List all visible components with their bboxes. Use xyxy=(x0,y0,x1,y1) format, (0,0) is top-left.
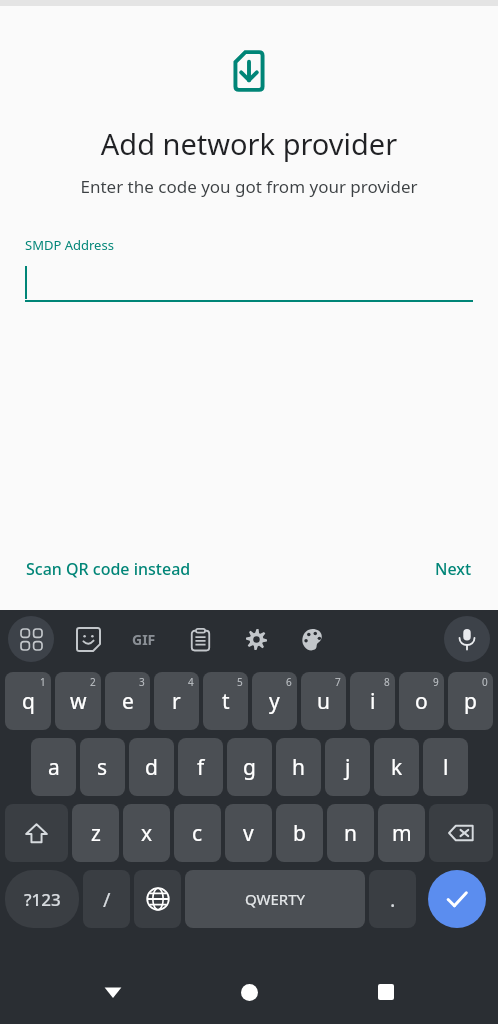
button[interactable]: g xyxy=(227,738,272,796)
button[interactable]: j xyxy=(325,738,370,796)
staticText: g xyxy=(243,753,256,782)
button[interactable]: k xyxy=(374,738,419,796)
button[interactable]: Voice input xyxy=(444,616,490,662)
staticText: t xyxy=(222,687,230,716)
staticText: q xyxy=(22,687,35,716)
staticText: / xyxy=(103,886,111,913)
button[interactable]: p xyxy=(448,672,493,730)
button[interactable]: Enter xyxy=(428,870,486,928)
button[interactable]: a xyxy=(31,738,76,796)
staticText: SMDP Address xyxy=(25,236,114,254)
staticText: o xyxy=(415,687,428,716)
staticText: j xyxy=(345,753,351,782)
button[interactable]: Recents xyxy=(362,968,410,1016)
button[interactable]: u xyxy=(301,672,346,730)
button[interactable]: QWERTY xyxy=(185,870,365,928)
button[interactable]: Back xyxy=(89,968,137,1016)
button[interactable]: h xyxy=(276,738,321,796)
button[interactable]: s xyxy=(80,738,125,796)
button[interactable]: ?123 xyxy=(5,870,79,928)
button[interactable]: f xyxy=(178,738,223,796)
button[interactable]: Backspace xyxy=(429,804,493,862)
button[interactable]: Next xyxy=(427,552,480,586)
staticText: b xyxy=(293,819,306,848)
button[interactable]: b xyxy=(276,804,323,862)
staticText: ?123 xyxy=(24,888,61,911)
button[interactable]: SMDP Address xyxy=(25,236,473,302)
button[interactable]: w xyxy=(55,672,101,730)
staticText: r xyxy=(172,687,181,716)
staticText: GIF xyxy=(132,630,156,649)
button[interactable]: l xyxy=(423,738,468,796)
staticText: QWERTY xyxy=(245,889,306,909)
button[interactable]: . xyxy=(369,870,416,928)
staticText: v xyxy=(243,819,254,848)
staticText: 9 xyxy=(433,675,439,689)
button[interactable]: More options xyxy=(8,616,54,662)
staticText: 7 xyxy=(335,675,341,689)
staticText: Scan QR code instead xyxy=(26,558,191,580)
button[interactable]: i xyxy=(350,672,395,730)
staticText: y xyxy=(269,687,280,716)
staticText: 6 xyxy=(286,675,292,689)
staticText: 8 xyxy=(384,675,390,689)
staticText: n xyxy=(344,819,357,848)
button[interactable]: Home xyxy=(225,968,273,1016)
staticText: s xyxy=(97,753,108,782)
staticText: 2 xyxy=(90,675,96,689)
button[interactable]: Change language xyxy=(134,870,181,928)
staticText: 3 xyxy=(139,675,145,689)
staticText: l xyxy=(443,753,449,782)
button[interactable]: o xyxy=(399,672,444,730)
button[interactable]: z xyxy=(72,804,119,862)
button[interactable]: e xyxy=(105,672,150,730)
button[interactable]: d xyxy=(129,738,174,796)
button[interactable]: Theme xyxy=(290,617,334,661)
button[interactable]: GIF xyxy=(122,617,166,661)
staticText: a xyxy=(48,753,60,782)
staticText: . xyxy=(390,886,396,913)
staticText: u xyxy=(317,687,330,716)
button[interactable]: r xyxy=(154,672,199,730)
button[interactable]: Clipboard xyxy=(178,617,222,661)
button[interactable]: c xyxy=(174,804,221,862)
button[interactable]: v xyxy=(225,804,272,862)
button[interactable]: Settings xyxy=(234,617,278,661)
staticText: k xyxy=(391,753,403,782)
staticText: f xyxy=(197,753,205,782)
button[interactable]: Shift xyxy=(5,804,68,862)
button[interactable]: m xyxy=(378,804,425,862)
button[interactable]: Stickers xyxy=(66,617,110,661)
staticText: Next xyxy=(435,558,472,580)
staticText: 1 xyxy=(40,675,46,689)
staticText: z xyxy=(91,819,101,848)
button[interactable]: x xyxy=(123,804,170,862)
button[interactable]: / xyxy=(83,870,130,928)
staticText: Add network provider xyxy=(0,124,498,163)
staticText: Enter the code you got from your provide… xyxy=(0,175,498,198)
staticText: w xyxy=(70,687,87,716)
staticText: d xyxy=(145,753,158,782)
staticText: h xyxy=(292,753,305,782)
button[interactable]: t xyxy=(203,672,248,730)
staticText: m xyxy=(392,819,412,848)
staticText: 5 xyxy=(237,675,243,689)
staticText: c xyxy=(192,819,203,848)
staticText: 4 xyxy=(188,675,194,689)
button[interactable]: Scan QR code instead xyxy=(18,552,199,586)
button[interactable]: y xyxy=(252,672,297,730)
staticText: e xyxy=(122,687,134,716)
staticText: i xyxy=(370,687,376,716)
staticText: 0 xyxy=(482,675,488,689)
button[interactable]: n xyxy=(327,804,374,862)
button[interactable]: q xyxy=(5,672,51,730)
staticText: x xyxy=(141,819,153,848)
staticText: p xyxy=(464,687,477,716)
